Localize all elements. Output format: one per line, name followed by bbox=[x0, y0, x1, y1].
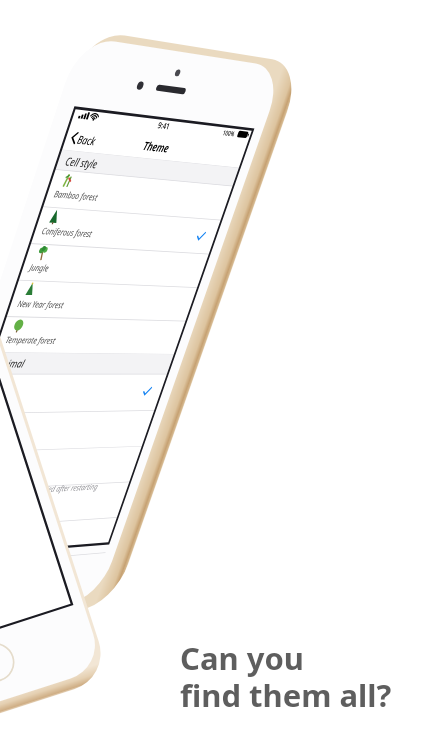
button[interactable] bbox=[0, 0, 422, 750]
